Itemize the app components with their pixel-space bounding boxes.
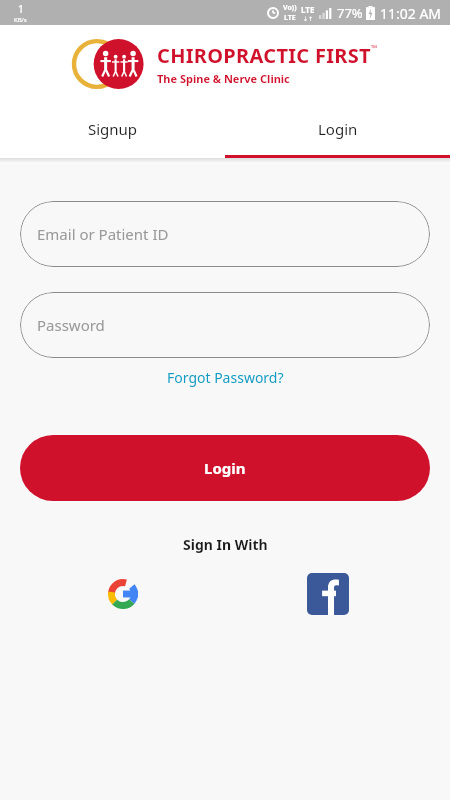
- staticText: LTE: [284, 13, 296, 23]
- staticText: 77%: [337, 4, 363, 22]
- button[interactable]: Email or Patient ID: [20, 201, 430, 267]
- staticText: LTE: [301, 4, 315, 15]
- staticText: KB/s: [14, 16, 27, 24]
- button[interactable]: Login: [20, 435, 430, 501]
- button[interactable]: Password: [20, 292, 430, 358]
- staticText: ↓↑: [303, 15, 314, 22]
- staticText: Signup: [88, 119, 138, 139]
- button[interactable]: Login: [225, 103, 450, 155]
- staticText: CHIROPRACTIC FIRST: [157, 42, 371, 69]
- staticText: Password: [37, 315, 105, 335]
- staticText: Email or Patient ID: [37, 224, 169, 244]
- staticText: The Spine & Nerve Clinic: [157, 71, 290, 86]
- staticText: Vo)): [283, 3, 297, 13]
- staticText: 11:02 AM: [380, 4, 442, 23]
- staticText: Login: [204, 458, 246, 478]
- button[interactable]: Forgot Password?: [161, 366, 290, 389]
- staticText: Sign In With: [183, 535, 268, 554]
- staticText: Login: [318, 119, 358, 139]
- staticText: Forgot Password?: [167, 368, 284, 387]
- staticText: 1: [18, 2, 24, 16]
- button[interactable]: Sign in with Facebook: [306, 572, 350, 616]
- button[interactable]: Sign in with Google: [101, 572, 145, 616]
- button[interactable]: Signup: [0, 103, 225, 155]
- staticText: ™: [371, 42, 378, 53]
